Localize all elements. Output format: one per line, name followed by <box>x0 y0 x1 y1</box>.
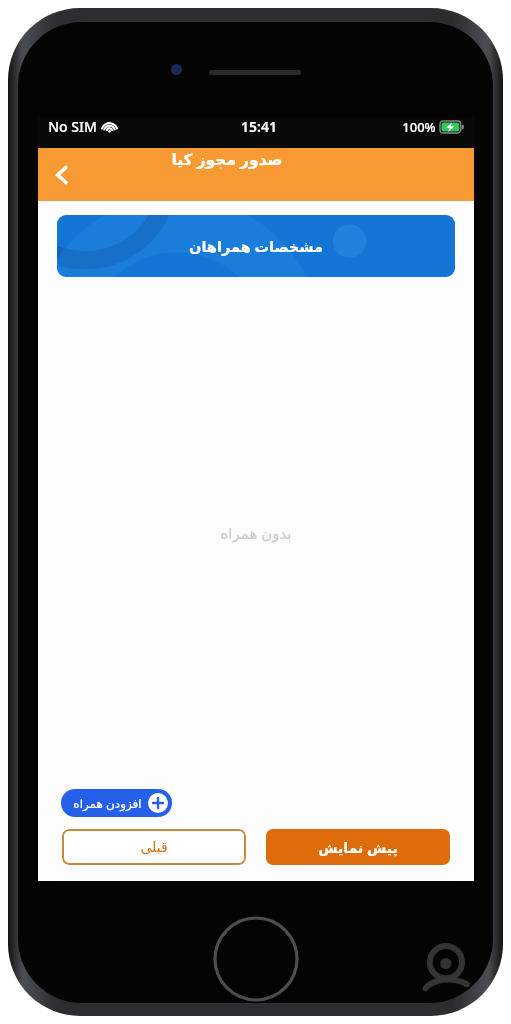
staticText: پیش نمایش <box>318 838 398 857</box>
staticText: قبلی <box>140 839 168 855</box>
button[interactable]: پیش نمایش <box>266 829 450 865</box>
staticText: بدون همراه <box>220 523 292 543</box>
button[interactable]: قبلی <box>62 829 246 865</box>
button[interactable]: Back <box>38 151 86 199</box>
staticText: 15:41 <box>241 117 277 136</box>
button[interactable]: مشخصات همراهان <box>57 215 455 277</box>
staticText: صدور مجوز کیا <box>171 148 283 169</box>
staticText: 100% <box>402 118 436 136</box>
button[interactable]: افزودن همراه <box>61 789 172 817</box>
staticText: No SIM <box>48 117 97 136</box>
staticText: افزودن همراه <box>73 795 142 811</box>
staticText: مشخصات همراهان <box>189 236 323 256</box>
